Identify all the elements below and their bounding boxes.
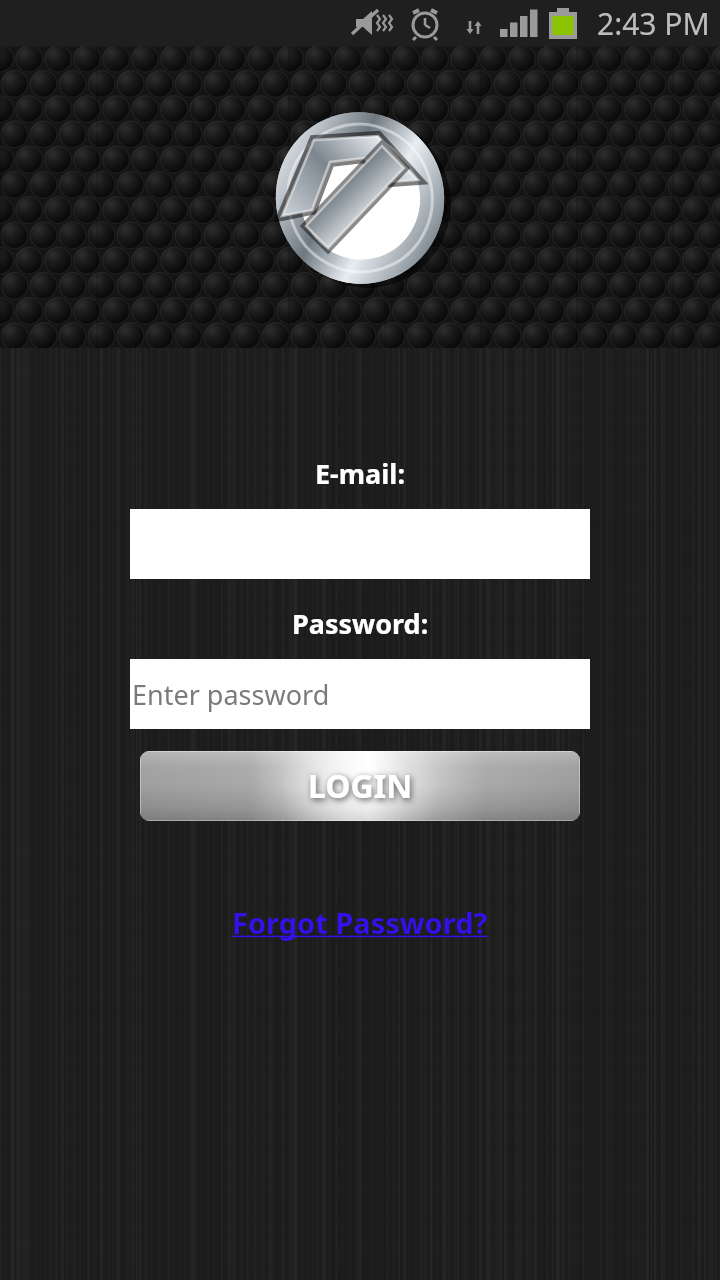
staticText: E-mail:	[315, 455, 405, 492]
button[interactable]: Forgot Password?	[226, 899, 494, 946]
staticText: Password:	[292, 605, 429, 642]
staticText: LOGIN	[308, 764, 413, 808]
staticText: 2:43 PM	[597, 3, 710, 44]
staticText: Forgot Password?	[232, 903, 488, 942]
button[interactable]: Enter password	[130, 659, 590, 729]
button[interactable]: LOGIN	[140, 751, 580, 821]
staticText: Enter password	[132, 676, 330, 713]
